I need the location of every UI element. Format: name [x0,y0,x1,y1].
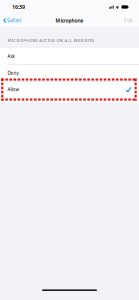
staticText: Deny [7,70,18,76]
button[interactable]: Deny [0,65,139,81]
button[interactable]: Safari [0,14,25,27]
button[interactable]: Ask [0,48,139,64]
staticText: Edit [124,17,133,24]
button[interactable]: Edit [118,14,139,27]
staticText: 16:39 [12,3,25,11]
staticText: Safari [7,17,21,24]
staticText: Allow [7,86,19,93]
staticText: Ask [7,53,14,59]
button[interactable]: Allow [0,81,139,98]
staticText: MICROPHONE ACCESS ON ALL WEBSITES [7,38,94,43]
staticText: Microphone [55,17,83,24]
